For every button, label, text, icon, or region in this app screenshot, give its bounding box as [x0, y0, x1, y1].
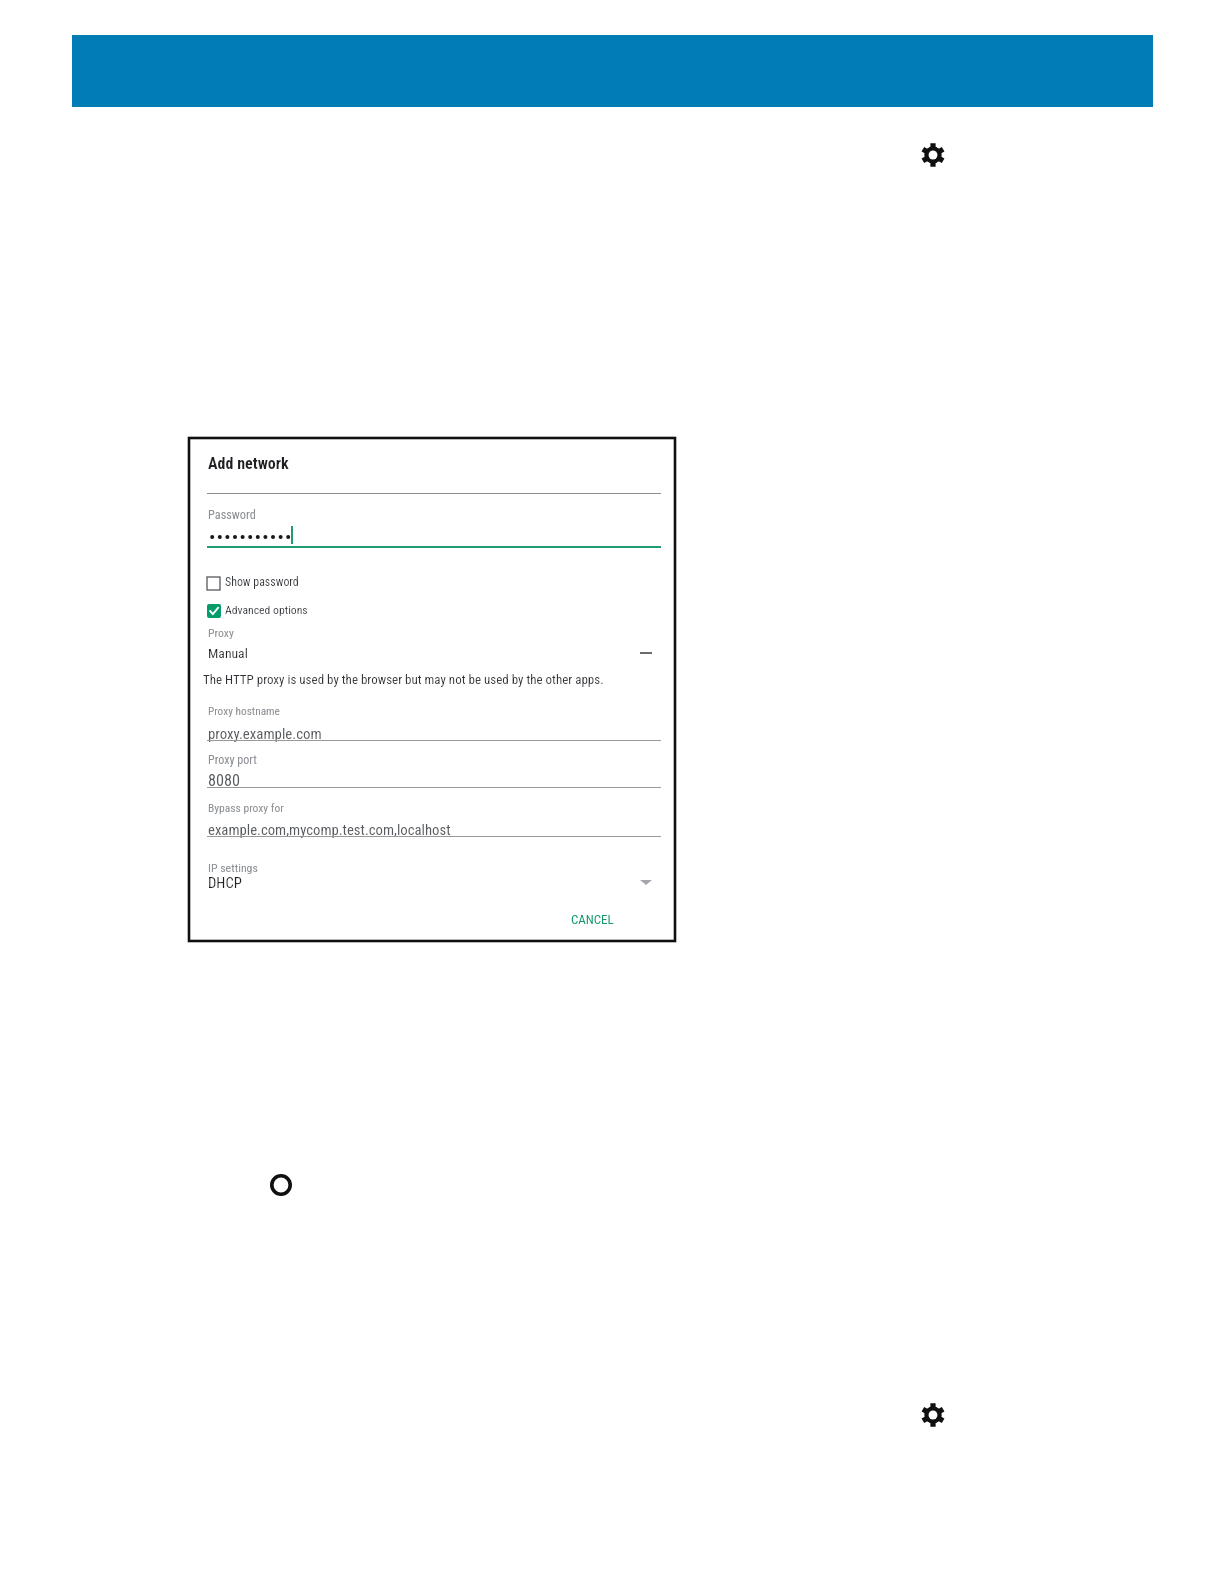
button[interactable]: Settings: [921, 1403, 945, 1427]
staticText: CANCEL: [571, 912, 614, 927]
button[interactable]: Home: [270, 1174, 292, 1196]
button[interactable]: CANCEL: [562, 906, 622, 930]
staticText: Bypass proxy for: [208, 801, 284, 815]
staticText: Manual: [208, 645, 248, 661]
staticText: Proxy port: [208, 753, 257, 767]
staticText: proxy.example.com: [208, 725, 322, 742]
button[interactable]: Show password: [203, 572, 301, 594]
staticText: Add network: [208, 454, 289, 473]
button[interactable]: IP settings: [208, 858, 660, 890]
staticText: Show password: [225, 575, 299, 589]
button[interactable]: Settings: [921, 143, 945, 167]
staticText: example.com,mycomp.test.com,localhost: [208, 821, 451, 838]
button[interactable]: Advanced options: [203, 600, 311, 622]
button[interactable]: Proxy: [208, 625, 660, 659]
staticText: Proxy: [208, 626, 234, 640]
staticText: Proxy hostname: [208, 704, 280, 717]
staticText: IP settings: [208, 861, 258, 875]
staticText: Advanced options: [225, 603, 308, 617]
staticText: 8080: [208, 771, 240, 790]
staticText: DHCP: [208, 874, 242, 891]
staticText: The HTTP proxy is used by the browser bu…: [203, 672, 604, 687]
staticText: Password: [208, 508, 256, 522]
